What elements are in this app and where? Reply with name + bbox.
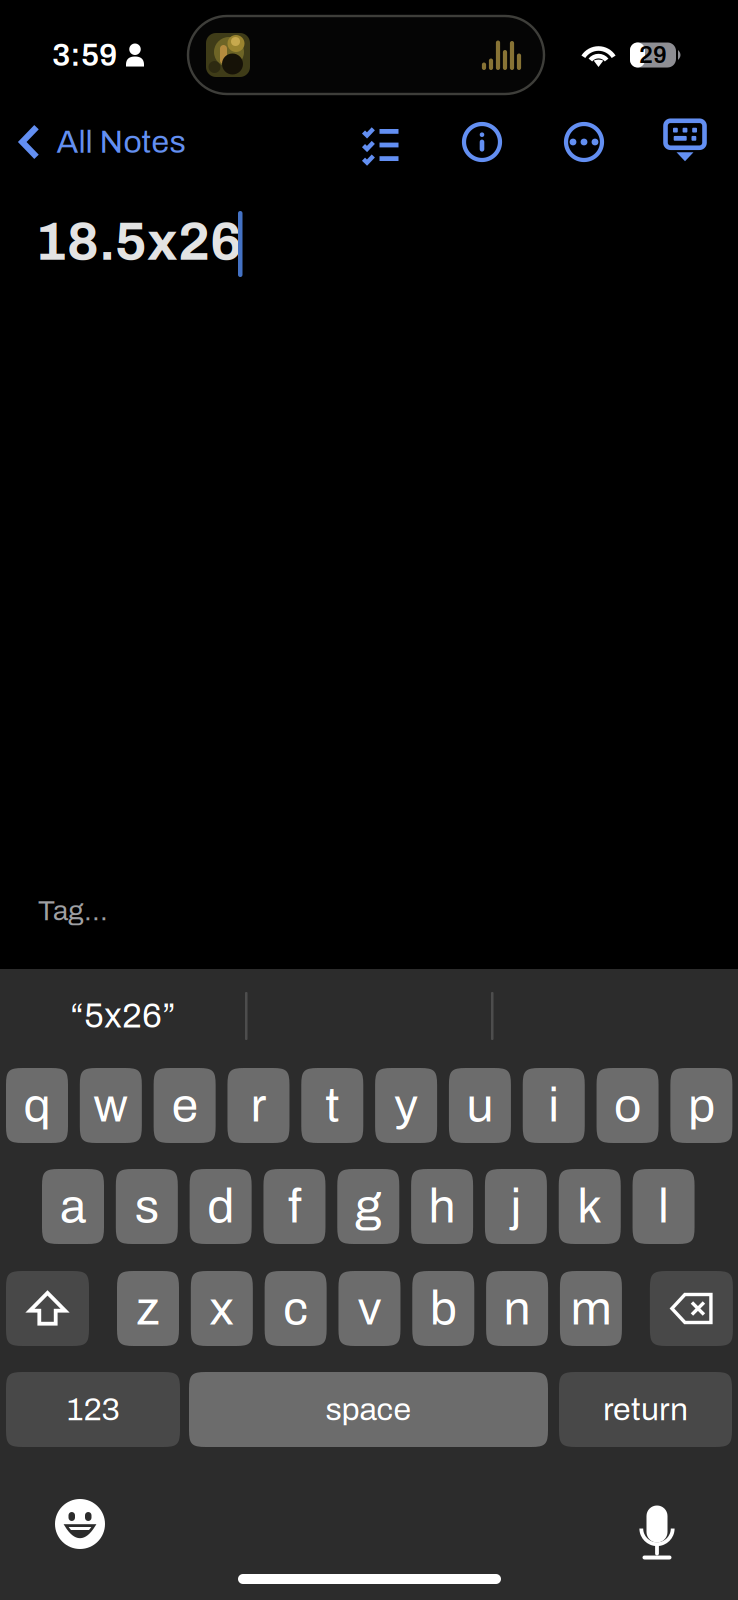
button[interactable]: Hide Keyboard bbox=[654, 110, 716, 172]
staticText: n bbox=[504, 1282, 531, 1335]
button[interactable]: Tag... bbox=[0, 891, 738, 931]
button[interactable]: Emoji bbox=[42, 1486, 118, 1562]
staticText: q bbox=[23, 1079, 50, 1132]
staticText: z bbox=[136, 1282, 160, 1335]
staticText: x bbox=[209, 1282, 234, 1335]
staticText: o bbox=[614, 1079, 641, 1132]
staticText: i bbox=[548, 1079, 559, 1132]
staticText: k bbox=[577, 1180, 602, 1233]
button[interactable]: v bbox=[338, 1271, 400, 1346]
staticText: y bbox=[394, 1079, 418, 1132]
button[interactable]: w bbox=[80, 1068, 142, 1143]
staticText: 123 bbox=[66, 1392, 119, 1427]
staticText: v bbox=[357, 1282, 381, 1335]
button[interactable]: Dictate bbox=[619, 1486, 695, 1562]
button[interactable]: a bbox=[42, 1169, 104, 1244]
button[interactable]: Info bbox=[451, 111, 513, 173]
staticText: space bbox=[325, 1392, 411, 1427]
staticText: “5x26” bbox=[70, 997, 176, 1035]
button[interactable]: Delete bbox=[650, 1271, 733, 1346]
button[interactable]: q bbox=[6, 1068, 68, 1143]
button[interactable]: Checklist bbox=[350, 111, 412, 173]
button[interactable]: u bbox=[449, 1068, 511, 1143]
button[interactable]: “5x26” bbox=[0, 980, 246, 1052]
button[interactable]: s bbox=[116, 1169, 178, 1244]
staticText: c bbox=[283, 1282, 308, 1335]
button[interactable]: g bbox=[337, 1169, 399, 1244]
button[interactable]: t bbox=[301, 1068, 363, 1143]
staticText: return bbox=[603, 1392, 688, 1427]
staticText: p bbox=[688, 1079, 715, 1132]
button[interactable]: i bbox=[523, 1068, 585, 1143]
staticText: All Notes bbox=[56, 125, 185, 159]
button[interactable]: h bbox=[411, 1169, 473, 1244]
button[interactable]: r bbox=[227, 1068, 289, 1143]
button[interactable]: j bbox=[485, 1169, 547, 1244]
staticText: s bbox=[135, 1180, 159, 1233]
staticText: d bbox=[207, 1180, 234, 1233]
staticText: a bbox=[60, 1180, 86, 1233]
button[interactable]: space bbox=[189, 1372, 548, 1447]
button[interactable]: c bbox=[265, 1271, 327, 1346]
button[interactable]: e bbox=[154, 1068, 216, 1143]
staticText: u bbox=[466, 1079, 493, 1132]
button[interactable]: p bbox=[670, 1068, 732, 1143]
button[interactable]: 123 bbox=[6, 1372, 180, 1447]
button[interactable]: f bbox=[263, 1169, 325, 1244]
staticText: b bbox=[430, 1282, 457, 1335]
staticText: 3:59 bbox=[52, 38, 117, 72]
staticText: 18.5x26 bbox=[35, 213, 242, 271]
button[interactable]: m bbox=[560, 1271, 622, 1346]
button[interactable]: n bbox=[486, 1271, 548, 1346]
staticText: w bbox=[93, 1079, 128, 1132]
staticText: f bbox=[288, 1180, 301, 1233]
staticText: h bbox=[429, 1180, 456, 1233]
staticText: r bbox=[250, 1079, 266, 1132]
button[interactable]: y bbox=[375, 1068, 437, 1143]
staticText: e bbox=[172, 1079, 198, 1132]
staticText: 29 bbox=[639, 42, 667, 68]
staticText: m bbox=[570, 1282, 611, 1335]
button[interactable]: b bbox=[412, 1271, 474, 1346]
staticText: g bbox=[355, 1180, 382, 1233]
button[interactable]: z bbox=[117, 1271, 179, 1346]
staticText: j bbox=[510, 1180, 521, 1233]
button[interactable]: More bbox=[553, 111, 615, 173]
button[interactable]: l bbox=[633, 1169, 695, 1244]
button[interactable]: x bbox=[191, 1271, 253, 1346]
staticText: l bbox=[658, 1180, 669, 1233]
button[interactable]: Shift bbox=[6, 1271, 89, 1346]
staticText: Tag... bbox=[38, 896, 108, 926]
button[interactable]: d bbox=[190, 1169, 252, 1244]
staticText: t bbox=[325, 1079, 339, 1132]
button[interactable]: All Notes bbox=[0, 111, 199, 173]
button[interactable]: k bbox=[559, 1169, 621, 1244]
button[interactable]: return bbox=[559, 1372, 732, 1447]
button[interactable]: o bbox=[597, 1068, 659, 1143]
